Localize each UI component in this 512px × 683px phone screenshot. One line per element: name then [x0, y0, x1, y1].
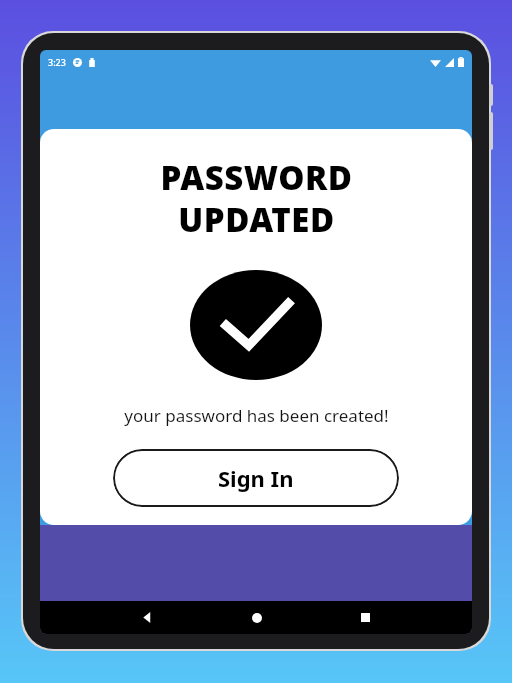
staticText: Sign In	[218, 463, 294, 493]
button[interactable]: Back	[92, 601, 202, 634]
button[interactable]: Home	[202, 601, 311, 634]
button[interactable]: Recent apps	[311, 601, 420, 634]
staticText: 3:23	[48, 56, 66, 68]
staticText: PASSWORD UPDATED	[160, 155, 353, 242]
button[interactable]: Sign In	[113, 449, 399, 507]
staticText: your password has been created!	[124, 404, 389, 427]
